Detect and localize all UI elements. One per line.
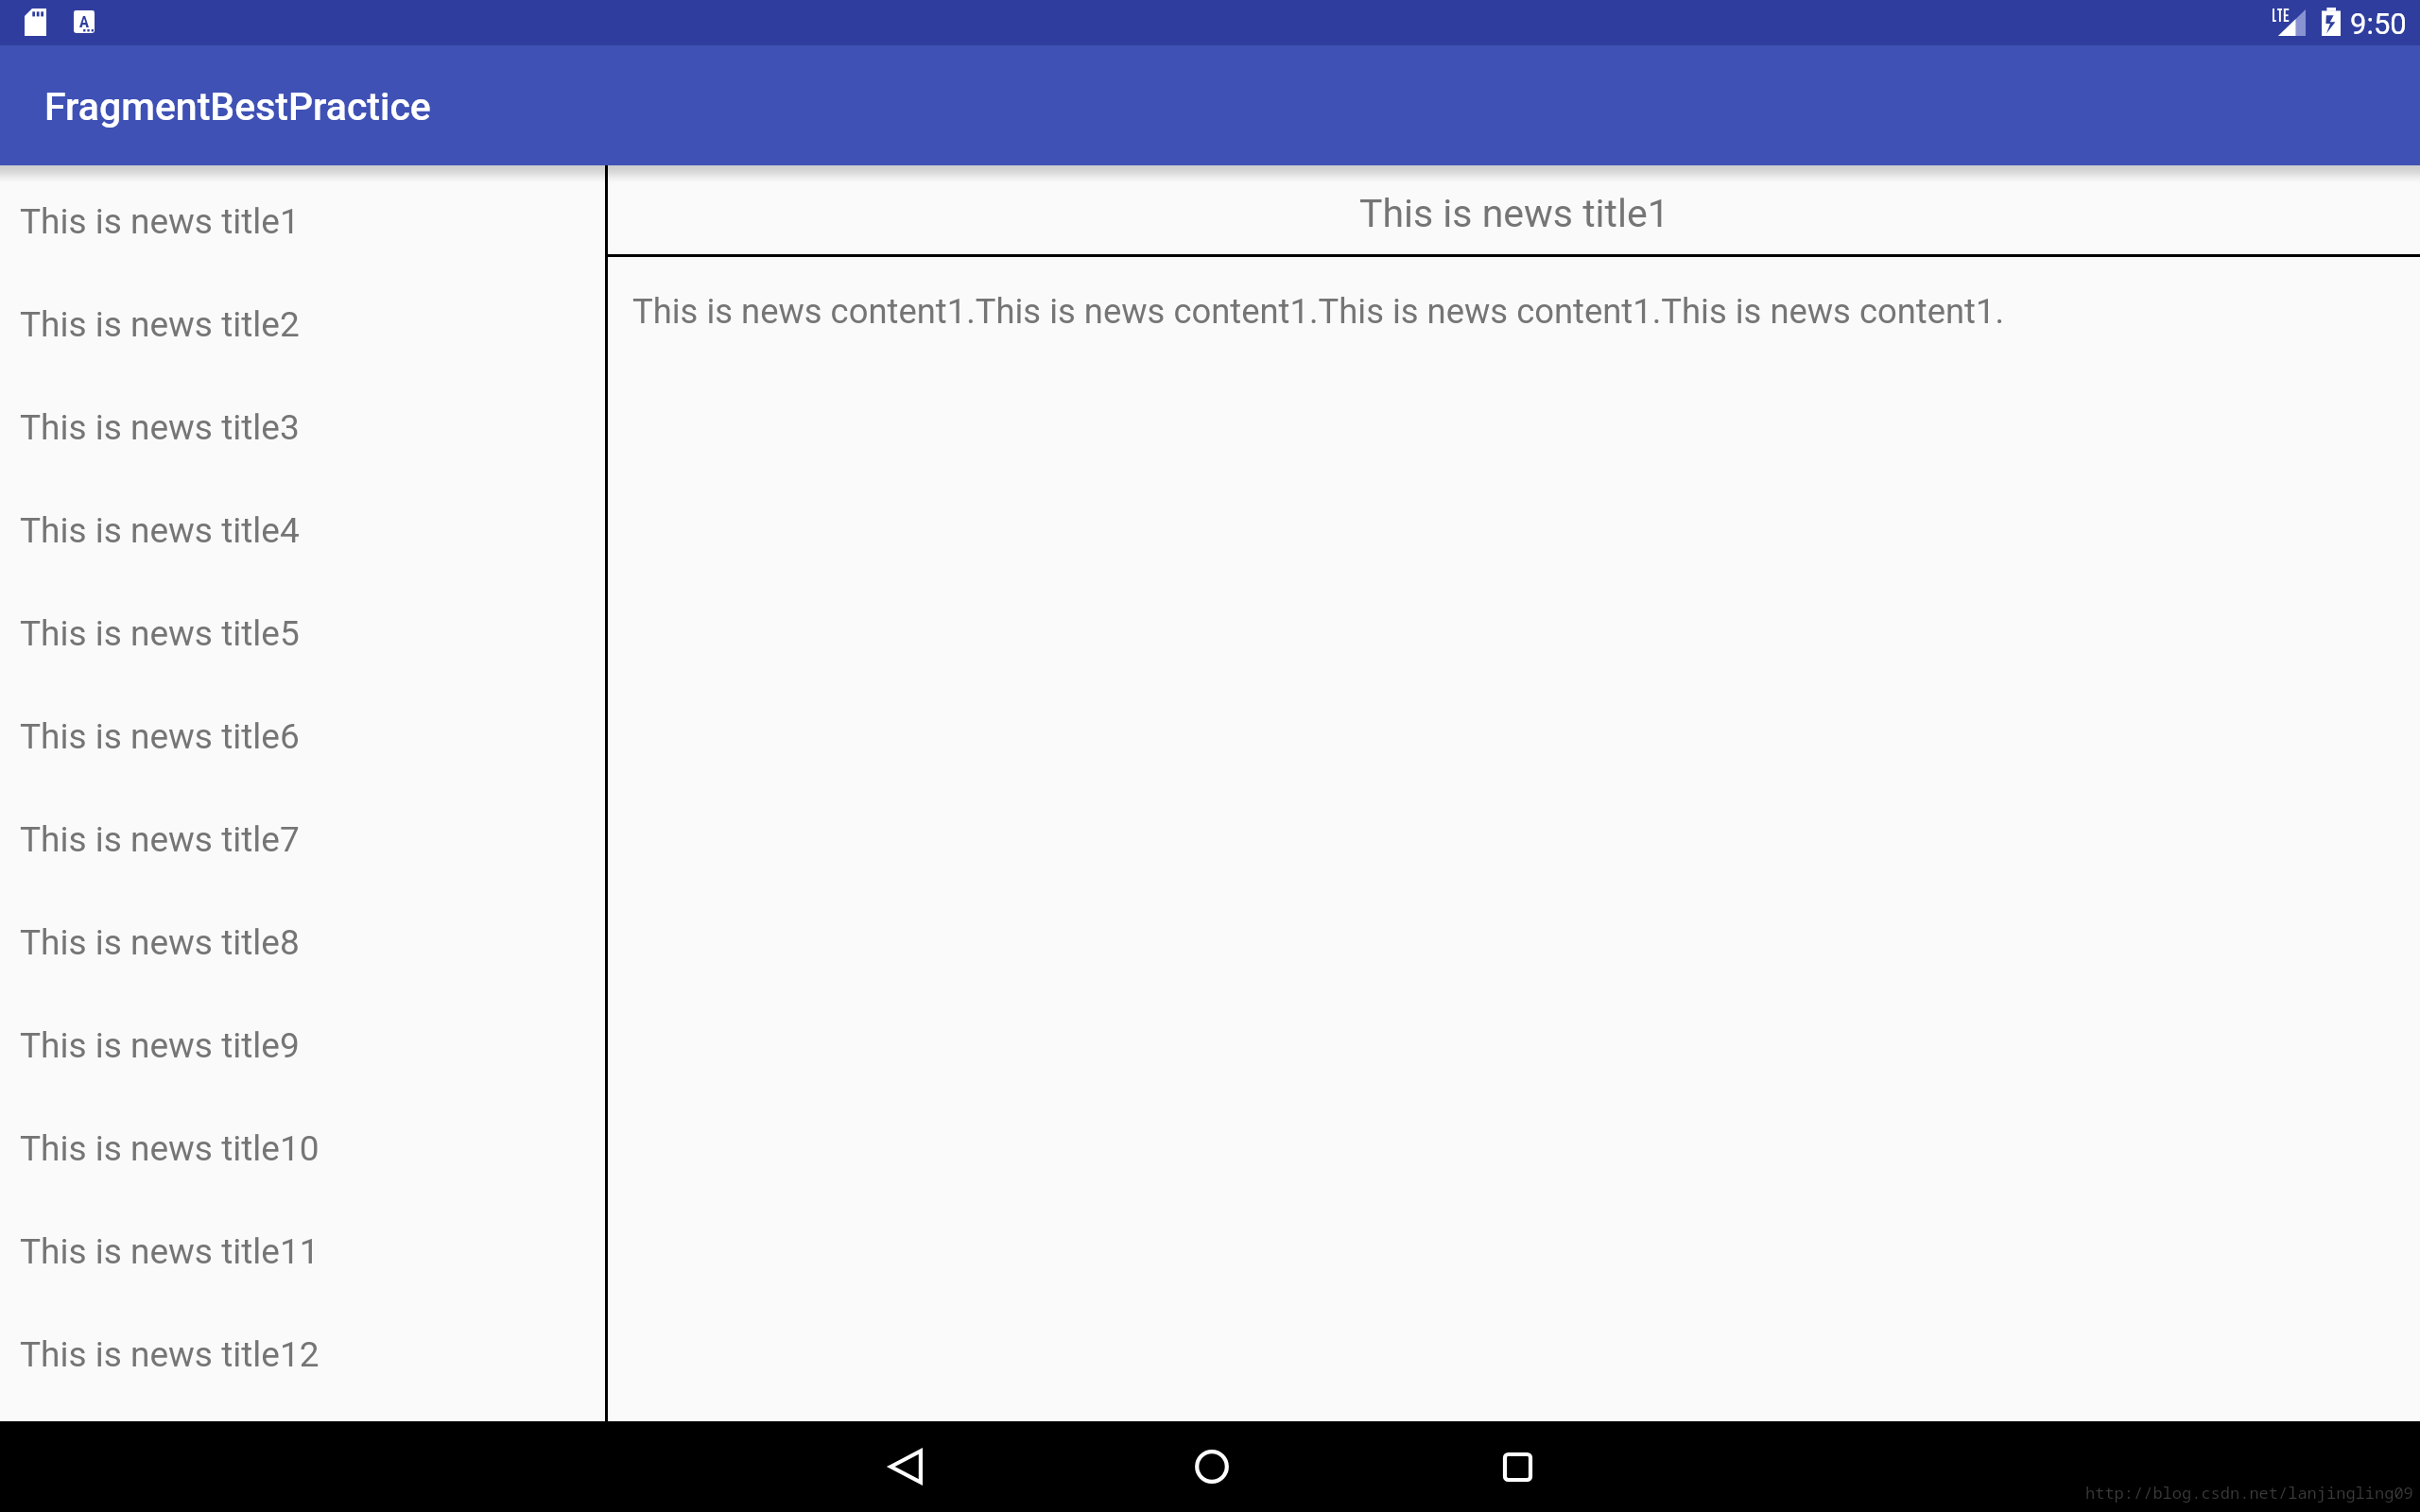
- button[interactable]: This is news title12: [0, 1303, 605, 1406]
- button[interactable]: This is news title1: [0, 170, 605, 273]
- button[interactable]: This is news title10: [0, 1097, 605, 1200]
- button[interactable]: This is news title7: [0, 788, 605, 891]
- staticText: 9:50: [2350, 7, 2407, 41]
- button[interactable]: This is news title4: [0, 479, 605, 582]
- staticText: FragmentBestPractice: [44, 84, 431, 129]
- staticText: http://blog.csdn.net/lanjingling09: [2085, 1482, 2413, 1503]
- button[interactable]: This is news title3: [0, 376, 605, 479]
- staticText: This is news title5: [20, 613, 300, 654]
- staticText: This is news title12: [20, 1334, 320, 1375]
- staticText: This is news title3: [20, 407, 300, 448]
- staticText: This is news title8: [20, 922, 300, 963]
- button[interactable]: This is news title8: [0, 891, 605, 994]
- button[interactable]: This is news title11: [0, 1200, 605, 1303]
- staticText: This is news title2: [20, 304, 300, 345]
- staticText: This is news title7: [20, 819, 300, 860]
- staticText: This is news title11: [20, 1231, 320, 1272]
- button[interactable]: Recent apps: [1472, 1421, 1563, 1512]
- button[interactable]: This is news title5: [0, 582, 605, 685]
- staticText: This is news title1: [20, 201, 300, 242]
- staticText: This is news title6: [20, 716, 300, 757]
- button[interactable]: Home: [1167, 1421, 1257, 1512]
- button[interactable]: This is news title9: [0, 994, 605, 1097]
- button[interactable]: This is news title2: [0, 273, 605, 376]
- staticText: This is news title9: [20, 1025, 300, 1066]
- staticText: This is news title1: [1359, 191, 1669, 236]
- button[interactable]: Back: [860, 1421, 951, 1512]
- button[interactable]: This is news title6: [0, 685, 605, 788]
- staticText: This is news content1.This is news conte…: [632, 291, 2005, 332]
- staticText: This is news title4: [20, 510, 300, 551]
- staticText: This is news title10: [20, 1128, 320, 1169]
